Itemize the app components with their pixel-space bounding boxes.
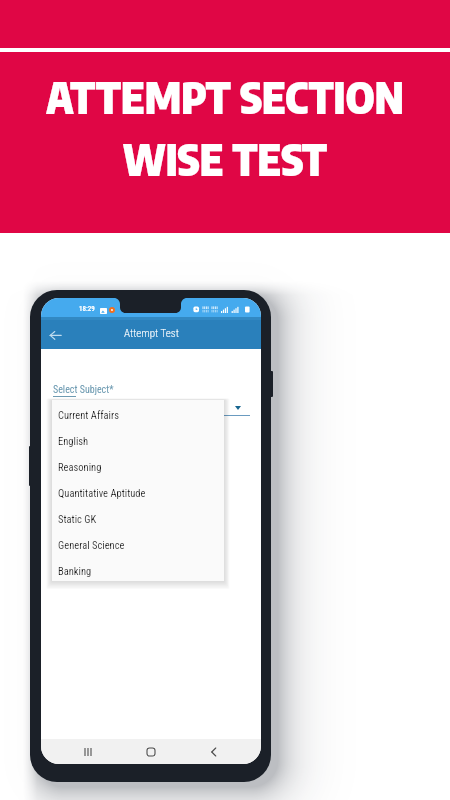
button[interactable]: English <box>52 428 224 454</box>
button[interactable]: General Science <box>52 532 224 558</box>
button[interactable]: Back <box>203 741 225 763</box>
button[interactable]: Current Affairs <box>52 402 224 428</box>
staticText: General Science <box>58 539 125 551</box>
button[interactable]: Back <box>42 317 70 349</box>
staticText: ATTEMPT SECTION <box>0 71 450 123</box>
staticText: Select Subject* <box>53 384 114 396</box>
staticText: Static GK <box>58 513 97 525</box>
button[interactable]: Home <box>140 741 162 763</box>
staticText: English <box>58 435 89 447</box>
staticText: Reasoning <box>58 461 102 473</box>
button[interactable]: Banking <box>52 558 224 584</box>
staticText: Banking <box>58 565 92 577</box>
staticText: WISE TEST <box>0 133 450 185</box>
staticText: Quantitative Aptitude <box>58 487 146 499</box>
staticText: Current Affairs <box>58 409 119 421</box>
button[interactable]: Reasoning <box>52 454 224 480</box>
button[interactable]: Static GK <box>52 506 224 532</box>
staticText: 18:29 <box>79 305 95 313</box>
button[interactable]: Recent apps <box>77 741 99 763</box>
button[interactable]: Quantitative Aptitude <box>52 480 224 506</box>
staticText: Attempt Test <box>124 327 179 340</box>
